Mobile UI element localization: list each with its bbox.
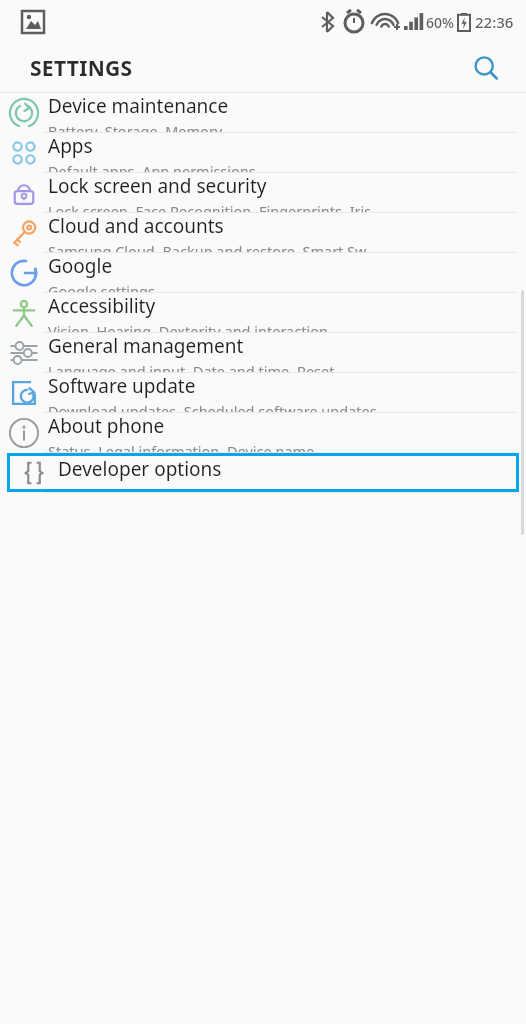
staticText: SETTINGS	[30, 54, 133, 83]
staticText: Battery, Storage, Memory	[48, 121, 223, 132]
button[interactable]: General management	[0, 333, 526, 372]
staticText: Vision, Hearing, Dexterity and interacti…	[48, 321, 328, 332]
staticText: Samsung Cloud, Backup and restore, Smart…	[48, 241, 378, 252]
staticText: Accessibility	[48, 293, 156, 319]
staticText: 22:36	[475, 12, 514, 32]
staticText: Cloud and accounts	[48, 213, 224, 239]
button[interactable]: Developer options	[10, 456, 516, 489]
button[interactable]: About phone	[0, 413, 526, 452]
staticText: Developer options	[58, 456, 222, 482]
staticText: Device maintenance	[48, 93, 229, 119]
button[interactable]: Search	[464, 46, 508, 90]
staticText: Status, Legal information, Device name	[48, 441, 315, 452]
staticText: 60%	[426, 13, 454, 32]
staticText: Default apps, App permissions	[48, 161, 256, 172]
staticText: General management	[48, 333, 244, 359]
staticText: Google	[48, 253, 113, 279]
staticText: Lock screen and security	[48, 173, 267, 199]
button[interactable]: Google	[0, 253, 526, 292]
staticText: Download updates, Scheduled software upd…	[48, 401, 377, 412]
button[interactable]: Software update	[0, 373, 526, 412]
staticText: Language and input, Date and time, Reset	[48, 361, 335, 372]
staticText: Software update	[48, 373, 196, 399]
button[interactable]: Apps	[0, 133, 526, 172]
staticText: About phone	[48, 413, 165, 439]
button[interactable]: Lock screen and security	[0, 173, 526, 212]
button[interactable]: Device maintenance	[0, 93, 526, 132]
staticText: Google settings	[48, 281, 155, 292]
button[interactable]: Cloud and accounts	[0, 213, 526, 252]
button[interactable]: Accessibility	[0, 293, 526, 332]
staticText: Apps	[48, 133, 93, 159]
staticText: Lock screen, Face Recognition, Fingerpri…	[48, 201, 372, 212]
